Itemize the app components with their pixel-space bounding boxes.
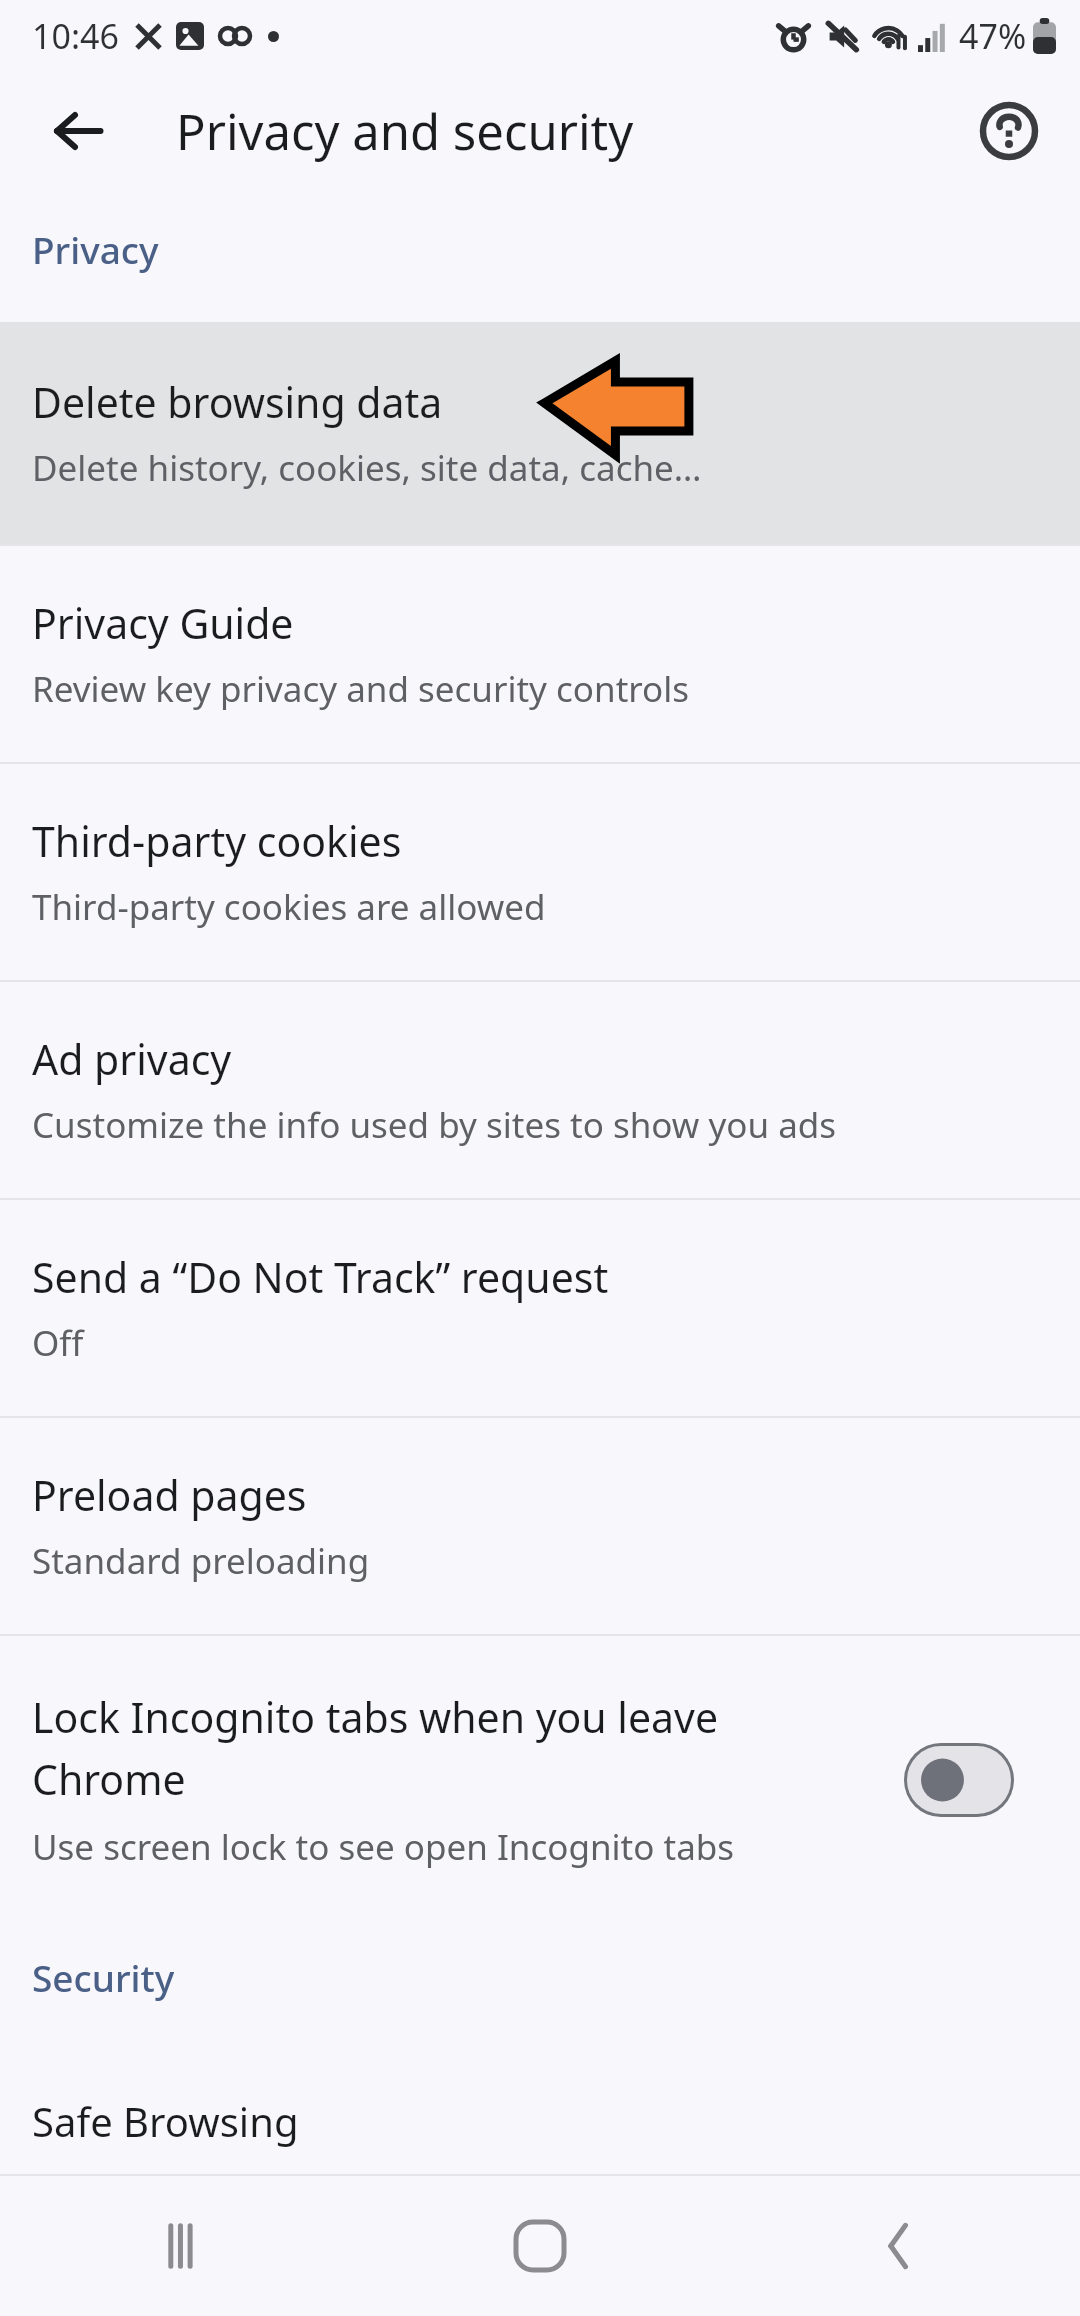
button[interactable]: Back [720,2176,1080,2316]
staticText: Standard preloading [32,1537,370,1585]
staticText: Privacy [32,224,159,274]
staticText: Chrome [32,1751,186,1807]
staticText: Third-party cookies are allowed [32,883,546,931]
staticText: Delete browsing data [32,374,443,430]
button[interactable]: Lock Incognito tabs when you leave [0,1636,1080,1924]
button[interactable]: Privacy Guide [0,546,1080,762]
button[interactable]: Preload pages [0,1418,1080,1634]
staticText: Send a “Do Not Track” request [32,1249,609,1305]
button[interactable]: Send a “Do Not Track” request [0,1200,1080,1416]
staticText: 47% [959,13,1027,59]
button[interactable]: Home [360,2176,720,2316]
button[interactable]: Help [962,84,1056,178]
button[interactable]: Third-party cookies [0,764,1080,980]
staticText: Use screen lock to see open Incognito ta… [32,1823,735,1871]
staticText: Third-party cookies [32,813,402,869]
button[interactable]: Recent apps [0,2176,360,2316]
staticText: Off [32,1319,84,1367]
staticText: Privacy Guide [32,595,294,651]
button[interactable]: Back [32,85,124,177]
button[interactable]: Delete browsing data [0,322,1080,544]
staticText: Customize the info used by sites to show… [32,1101,837,1149]
staticText: Review key privacy and security controls [32,665,689,713]
staticText: Lock Incognito tabs when you leave [32,1689,719,1745]
staticText: Safe Browsing [32,2094,299,2148]
staticText: Delete history, cookies, site data, cach… [32,444,702,492]
button[interactable]: Lock Incognito tabs, off [904,1743,1014,1817]
button[interactable]: Ad privacy [0,982,1080,1198]
staticText: Preload pages [32,1467,307,1523]
staticText: 10:46 [32,13,119,59]
staticText: Ad privacy [32,1031,232,1087]
staticText: Privacy and security [176,98,634,165]
staticText: Security [32,1952,175,2002]
